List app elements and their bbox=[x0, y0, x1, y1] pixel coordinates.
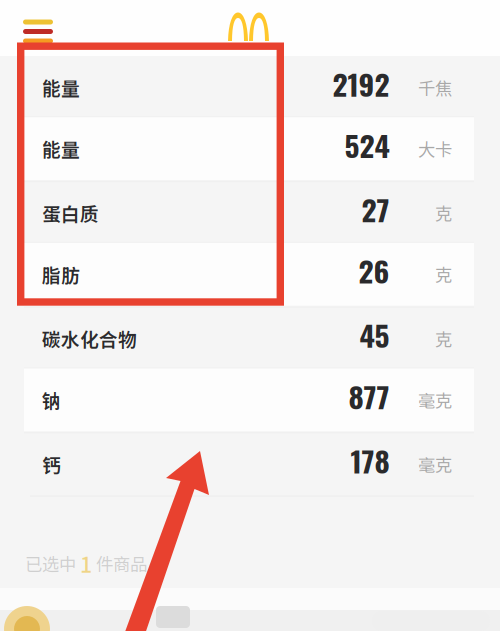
staticText: 27 bbox=[361, 187, 389, 231]
staticText: 钠 bbox=[42, 386, 61, 413]
staticText: 件商品 bbox=[96, 551, 147, 576]
staticText: 脂肪 bbox=[42, 261, 80, 288]
staticText: 45 bbox=[359, 313, 389, 356]
staticText: 克 bbox=[435, 262, 452, 287]
staticText: 碳水化合物 bbox=[42, 325, 137, 352]
staticText: 178 bbox=[350, 438, 389, 482]
staticText: 毫克 bbox=[418, 387, 452, 412]
staticText: 524 bbox=[344, 123, 389, 166]
staticText: 已选中 bbox=[25, 551, 76, 576]
button[interactable]: Menu bbox=[15, 11, 61, 51]
staticText: 大卡 bbox=[418, 136, 452, 161]
staticText: 钙 bbox=[42, 451, 61, 478]
staticText: 2192 bbox=[332, 62, 389, 105]
staticText: 千焦 bbox=[418, 75, 452, 100]
staticText: 克 bbox=[435, 200, 452, 226]
button[interactable]: McDonald's home bbox=[228, 12, 269, 41]
staticText: 克 bbox=[435, 326, 452, 351]
staticText: 蛋白质 bbox=[42, 199, 99, 226]
staticText: 1 bbox=[80, 548, 92, 579]
staticText: 26 bbox=[358, 249, 389, 292]
staticText: 能量 bbox=[42, 135, 80, 162]
staticText: 毫克 bbox=[418, 452, 452, 477]
staticText: 能量 bbox=[42, 74, 80, 101]
staticText: 877 bbox=[348, 374, 389, 418]
